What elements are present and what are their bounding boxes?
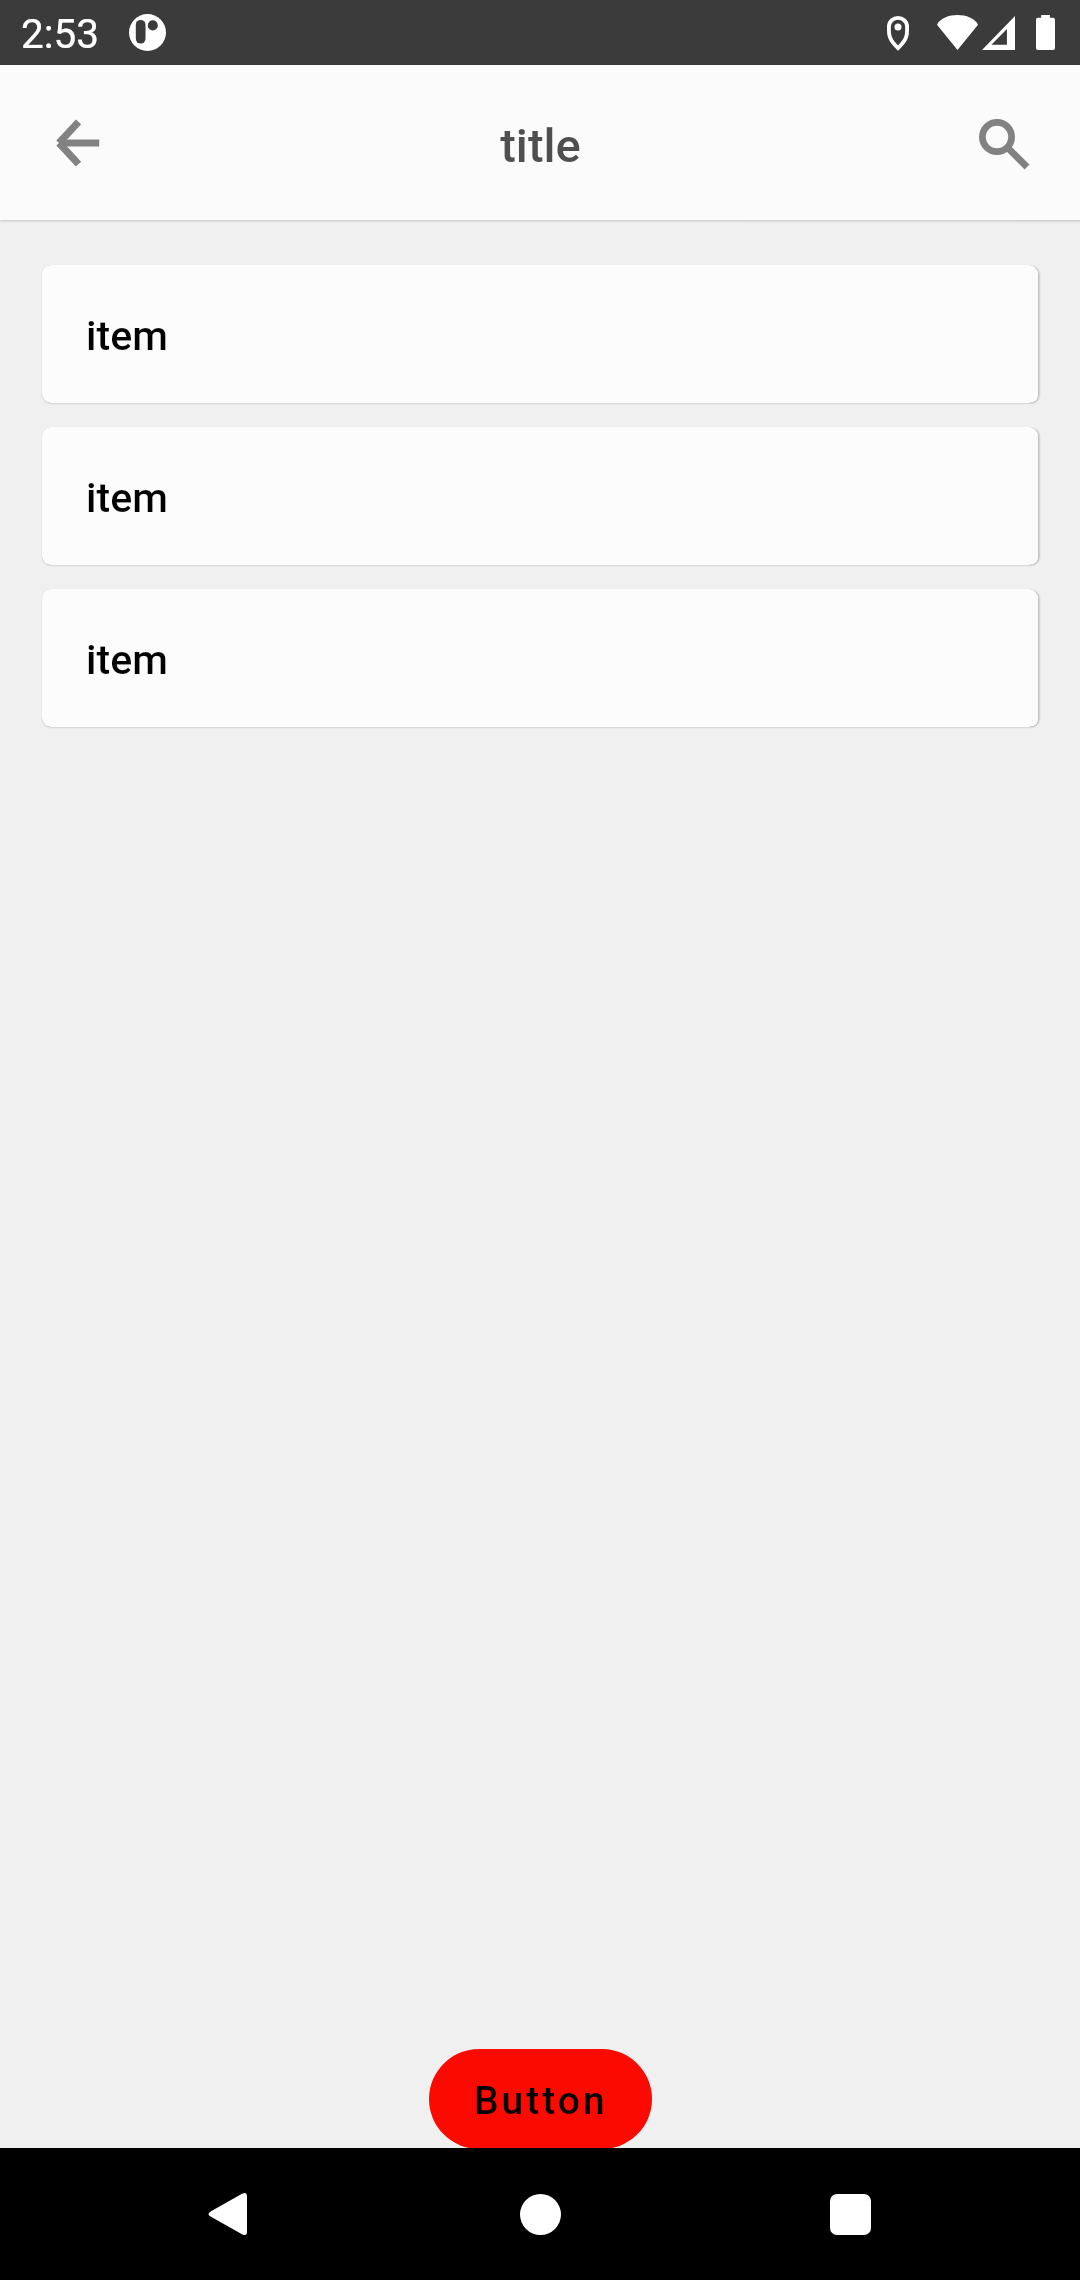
button[interactable]: item [42,589,1038,727]
button[interactable]: item [42,265,1038,403]
button[interactable]: item [42,427,1038,565]
staticText: Button [474,2078,608,2124]
button[interactable]: Back [12,77,143,208]
staticText: item [86,312,168,360]
staticText: item [86,474,168,522]
staticText: 2:53 [21,10,100,57]
staticText: item [86,636,168,684]
staticText: title [500,118,581,173]
button[interactable]: Recent apps [785,2149,915,2279]
button[interactable]: Button [429,2049,652,2149]
button[interactable]: Search [937,77,1068,208]
button[interactable]: Back [161,2149,291,2279]
button[interactable]: Home [475,2149,605,2279]
